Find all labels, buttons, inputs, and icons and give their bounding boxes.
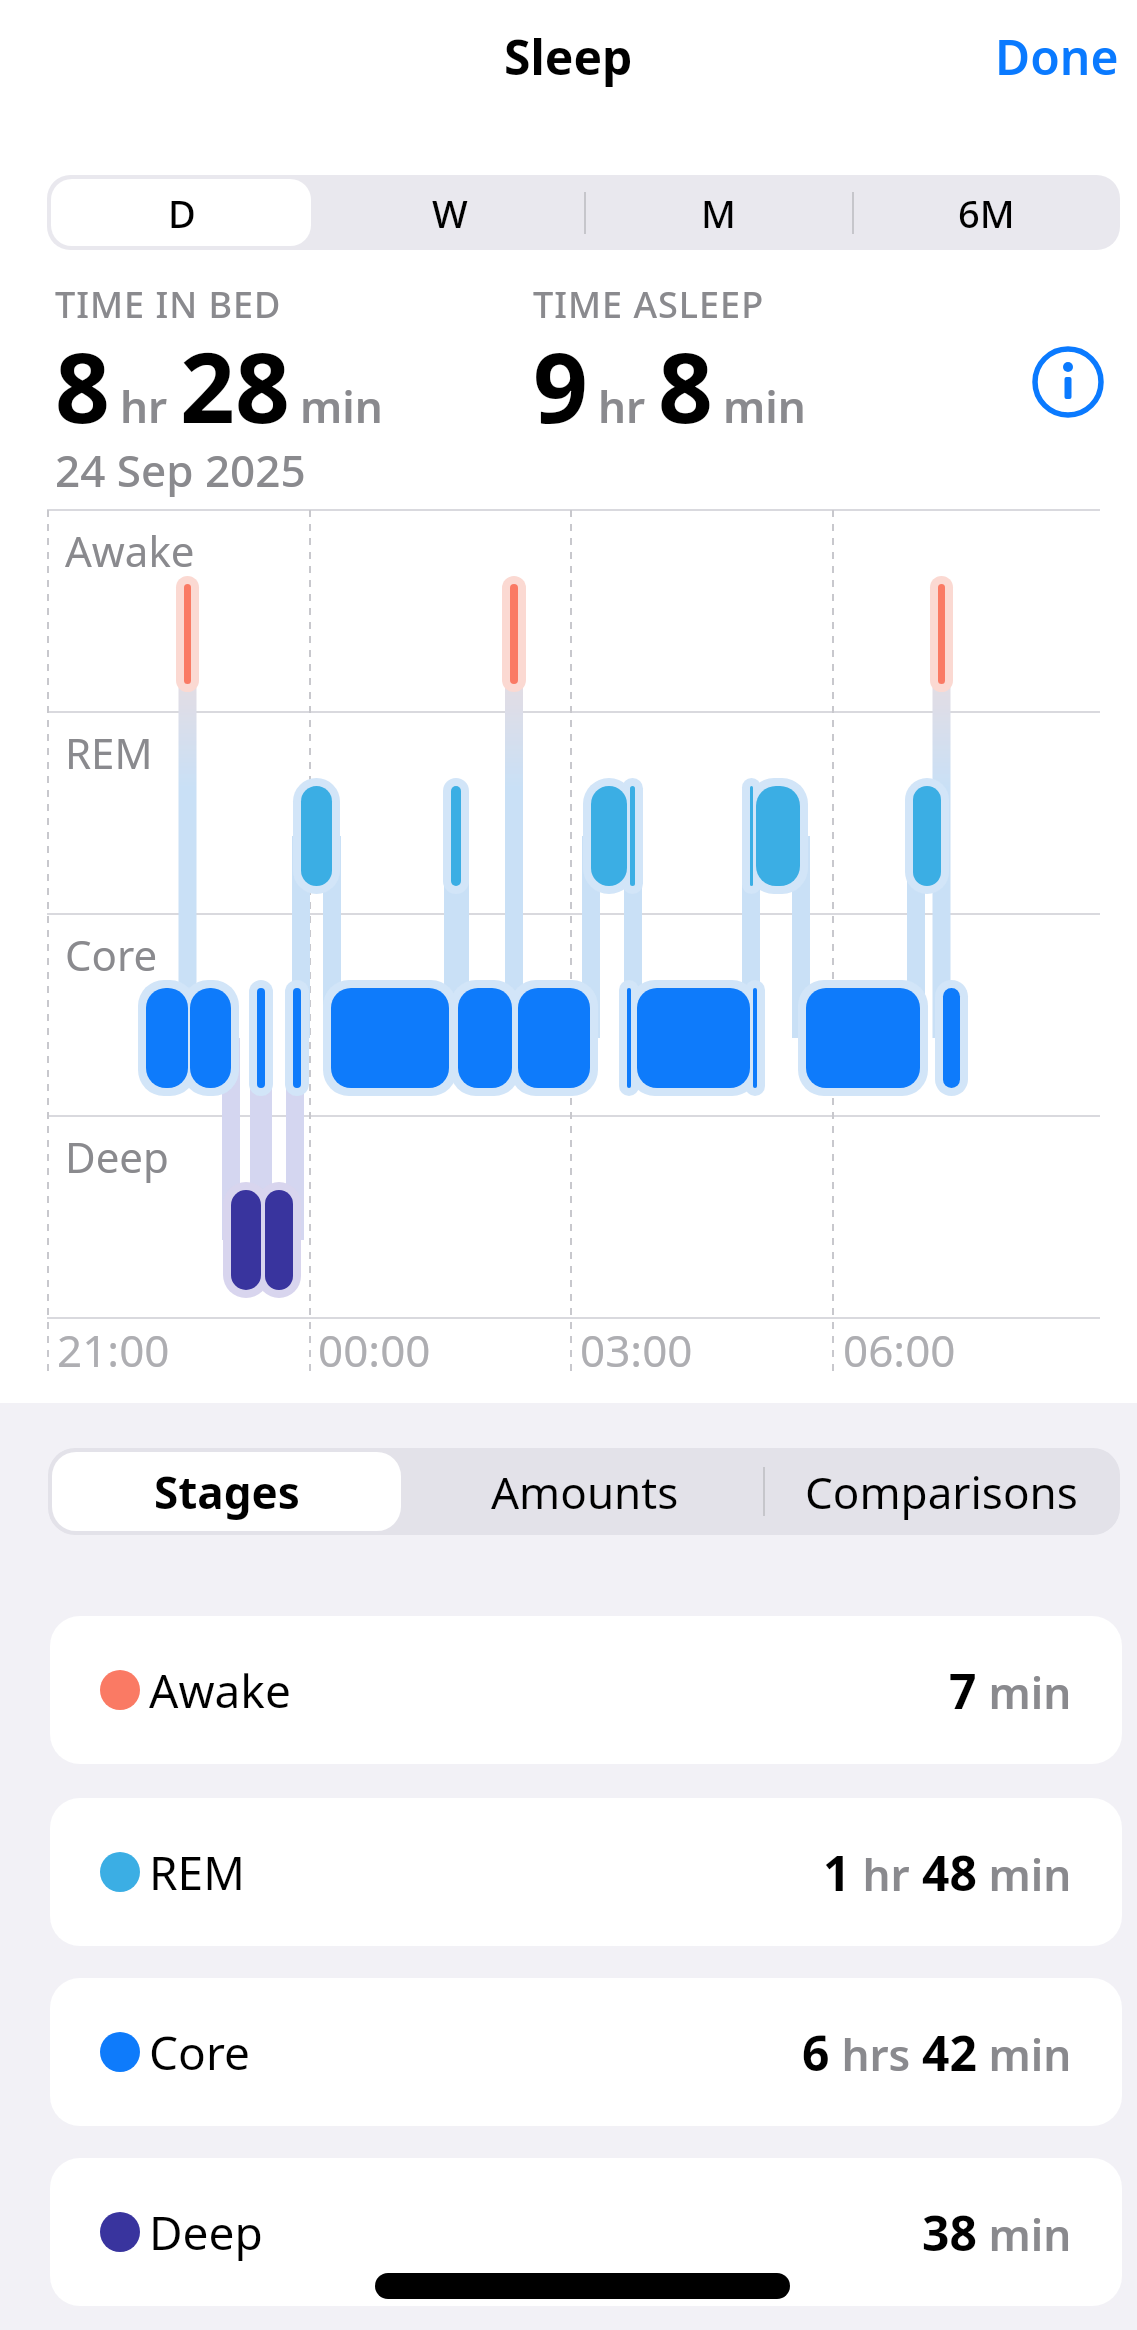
staticText: M <box>701 187 736 239</box>
staticText: Core <box>149 2021 250 2084</box>
staticText: hrs <box>830 2024 922 2084</box>
staticText: Done <box>995 24 1119 89</box>
button[interactable]: 6M <box>852 175 1120 250</box>
staticText: Core <box>65 926 158 983</box>
staticText: 42 <box>922 2020 977 2085</box>
staticText: hr <box>598 376 646 436</box>
staticText: Sleep <box>504 24 633 89</box>
staticText: 48 <box>922 1840 977 1905</box>
button[interactable]: M <box>584 175 852 250</box>
staticText: Deep <box>65 1128 169 1185</box>
staticText: 21:00 <box>57 1320 170 1380</box>
staticText: 28 <box>180 320 290 451</box>
button[interactable]: Stages <box>48 1448 406 1535</box>
staticText: 7 <box>949 1658 977 1723</box>
button[interactable]: REM <box>50 1798 1122 1946</box>
staticText: 03:00 <box>580 1320 693 1380</box>
staticText: Comparisons <box>805 1462 1078 1522</box>
staticText: TIME IN BED <box>55 280 282 329</box>
staticText: 06:00 <box>843 1320 956 1380</box>
staticText: 8 <box>658 320 713 451</box>
staticText: 9 <box>533 320 588 451</box>
staticText: Amounts <box>491 1462 679 1522</box>
button[interactable] <box>1035 349 1101 415</box>
staticText: Awake <box>149 1659 291 1722</box>
button[interactable]: Amounts <box>406 1448 763 1535</box>
button[interactable]: Deep <box>50 2158 1122 2306</box>
staticText: min <box>977 2024 1072 2084</box>
staticText: 8 <box>55 320 110 451</box>
staticText: min <box>723 376 806 436</box>
button[interactable]: Comparisons <box>763 1448 1120 1535</box>
button[interactable]: Done <box>995 24 1119 89</box>
staticText: REM <box>65 724 153 781</box>
staticText: Deep <box>149 2201 263 2264</box>
staticText: W <box>432 187 468 239</box>
staticText: TIME ASLEEP <box>533 280 765 329</box>
staticText: hr <box>851 1844 922 1904</box>
staticText: min <box>977 1662 1072 1722</box>
staticText: 1 <box>823 1840 851 1905</box>
staticText: min <box>977 2204 1072 2264</box>
staticText: 6M <box>958 187 1015 239</box>
button[interactable]: Awake <box>50 1616 1122 1764</box>
button[interactable]: D <box>47 175 316 250</box>
staticText: REM <box>149 1841 245 1904</box>
staticText: Stages <box>154 1462 300 1522</box>
button[interactable]: Core <box>50 1978 1122 2126</box>
staticText: 00:00 <box>318 1320 431 1380</box>
staticText: 6 <box>802 2020 830 2085</box>
staticText: Awake <box>65 522 195 579</box>
staticText: 38 <box>922 2200 977 2265</box>
staticText: 24 Sep 2025 <box>55 440 306 500</box>
button[interactable]: W <box>316 175 584 250</box>
staticText: min <box>977 1844 1072 1904</box>
staticText: D <box>168 187 196 239</box>
staticText: min <box>300 376 383 436</box>
staticText: hr <box>120 376 168 436</box>
